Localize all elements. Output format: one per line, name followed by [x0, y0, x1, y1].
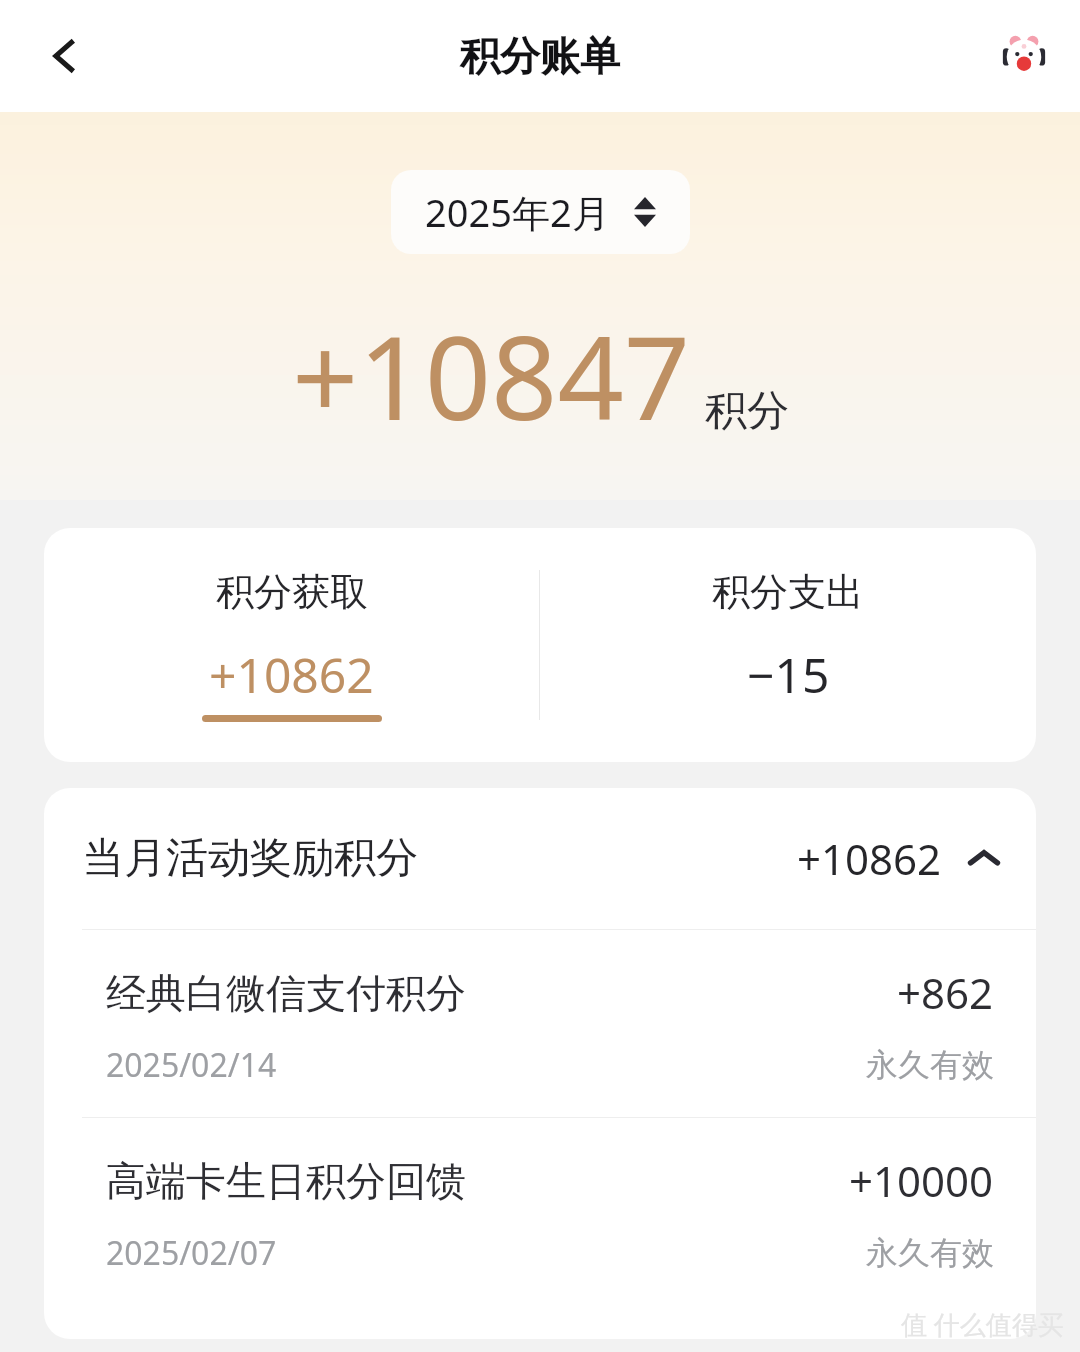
staticText: 积分	[705, 385, 789, 438]
button[interactable]: 高端卡生日积分回馈	[44, 1118, 1036, 1305]
staticText: 经典白微信支付积分	[106, 968, 466, 1018]
button[interactable]: 经典白微信支付积分	[44, 930, 1036, 1117]
staticText: 永久有效	[866, 1233, 994, 1273]
button[interactable]: 积分获取	[44, 568, 539, 722]
staticText: 积分账单	[460, 31, 620, 81]
staticText: 2025年2月	[425, 186, 610, 238]
staticText: 永久有效	[866, 1045, 994, 1085]
staticText: +10862	[797, 830, 942, 887]
button[interactable]: 当月活动奖励积分	[44, 788, 1036, 929]
staticText: 积分支出	[712, 568, 864, 616]
button[interactable]: 2025年2月	[391, 170, 690, 254]
staticText: 值 什么值得买	[901, 1306, 1064, 1342]
staticText: +10847	[292, 296, 691, 454]
staticText: 积分获取	[216, 568, 368, 616]
staticText: +10000	[849, 1152, 994, 1209]
button[interactable]: 积分支出	[540, 568, 1036, 722]
button[interactable]: Back	[34, 26, 94, 86]
staticText: 2025/02/14	[106, 1043, 277, 1087]
staticText: +862	[897, 964, 994, 1021]
button[interactable]: Customer service	[996, 28, 1052, 84]
staticText: 高端卡生日积分回馈	[106, 1156, 466, 1206]
staticText: +10862	[209, 642, 374, 707]
staticText: 当月活动奖励积分	[82, 832, 418, 885]
staticText: −15	[747, 642, 830, 707]
staticText: 2025/02/07	[106, 1231, 277, 1275]
